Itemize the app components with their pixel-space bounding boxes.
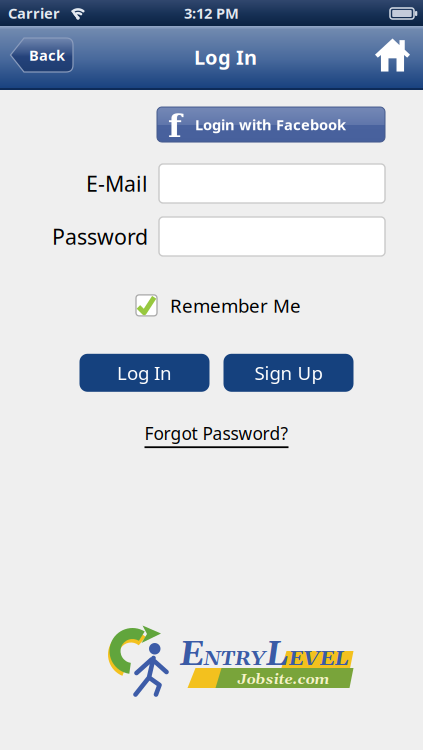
staticText: Password <box>52 222 148 251</box>
staticText: Jobsite.com <box>237 670 329 689</box>
staticText: Log In <box>194 44 257 70</box>
staticText: E-Mail <box>86 169 148 198</box>
staticText: L <box>265 634 288 676</box>
button[interactable]: Sign Up <box>223 354 353 392</box>
staticText: Remember Me <box>170 293 301 318</box>
button[interactable]: Forgot Password? <box>144 422 288 448</box>
staticText: Back <box>29 45 65 65</box>
staticText: Sign Up <box>254 360 322 385</box>
staticText: 3:12 PM <box>184 3 239 23</box>
staticText: Login with Facebook <box>195 115 346 134</box>
button[interactable]: Back <box>9 38 73 72</box>
staticText: E <box>179 634 203 676</box>
staticText: Carrier <box>8 3 60 23</box>
staticText: NTRY <box>203 646 265 672</box>
staticText: Forgot Password? <box>144 422 288 445</box>
button[interactable]: Remember Me <box>136 295 157 316</box>
button[interactable]: f <box>157 107 385 142</box>
button[interactable]: Log In <box>79 354 209 392</box>
staticText: Log In <box>117 360 172 385</box>
staticText: EVEL <box>288 646 348 672</box>
staticText: f <box>168 107 182 145</box>
button[interactable]: Home <box>375 38 410 71</box>
